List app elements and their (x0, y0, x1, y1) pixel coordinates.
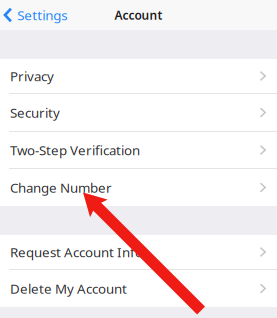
button[interactable]: Settings (0, 0, 67, 30)
button[interactable]: Request Account Info (0, 235, 277, 270)
button[interactable]: Two-Step Verification (0, 132, 277, 169)
button[interactable]: Change Number (0, 169, 277, 206)
staticText: Delete My Account (10, 280, 127, 297)
button[interactable]: Delete My Account (0, 270, 277, 307)
staticText: Change Number (10, 179, 112, 196)
staticText: Security (10, 104, 60, 121)
staticText: Privacy (10, 67, 54, 85)
staticText: Settings (17, 6, 67, 24)
button[interactable]: Security (0, 94, 277, 132)
button[interactable]: Privacy (0, 59, 277, 94)
staticText: Request Account Info (10, 243, 143, 261)
staticText: Two-Step Verification (10, 141, 140, 159)
staticText: Account (114, 7, 162, 23)
